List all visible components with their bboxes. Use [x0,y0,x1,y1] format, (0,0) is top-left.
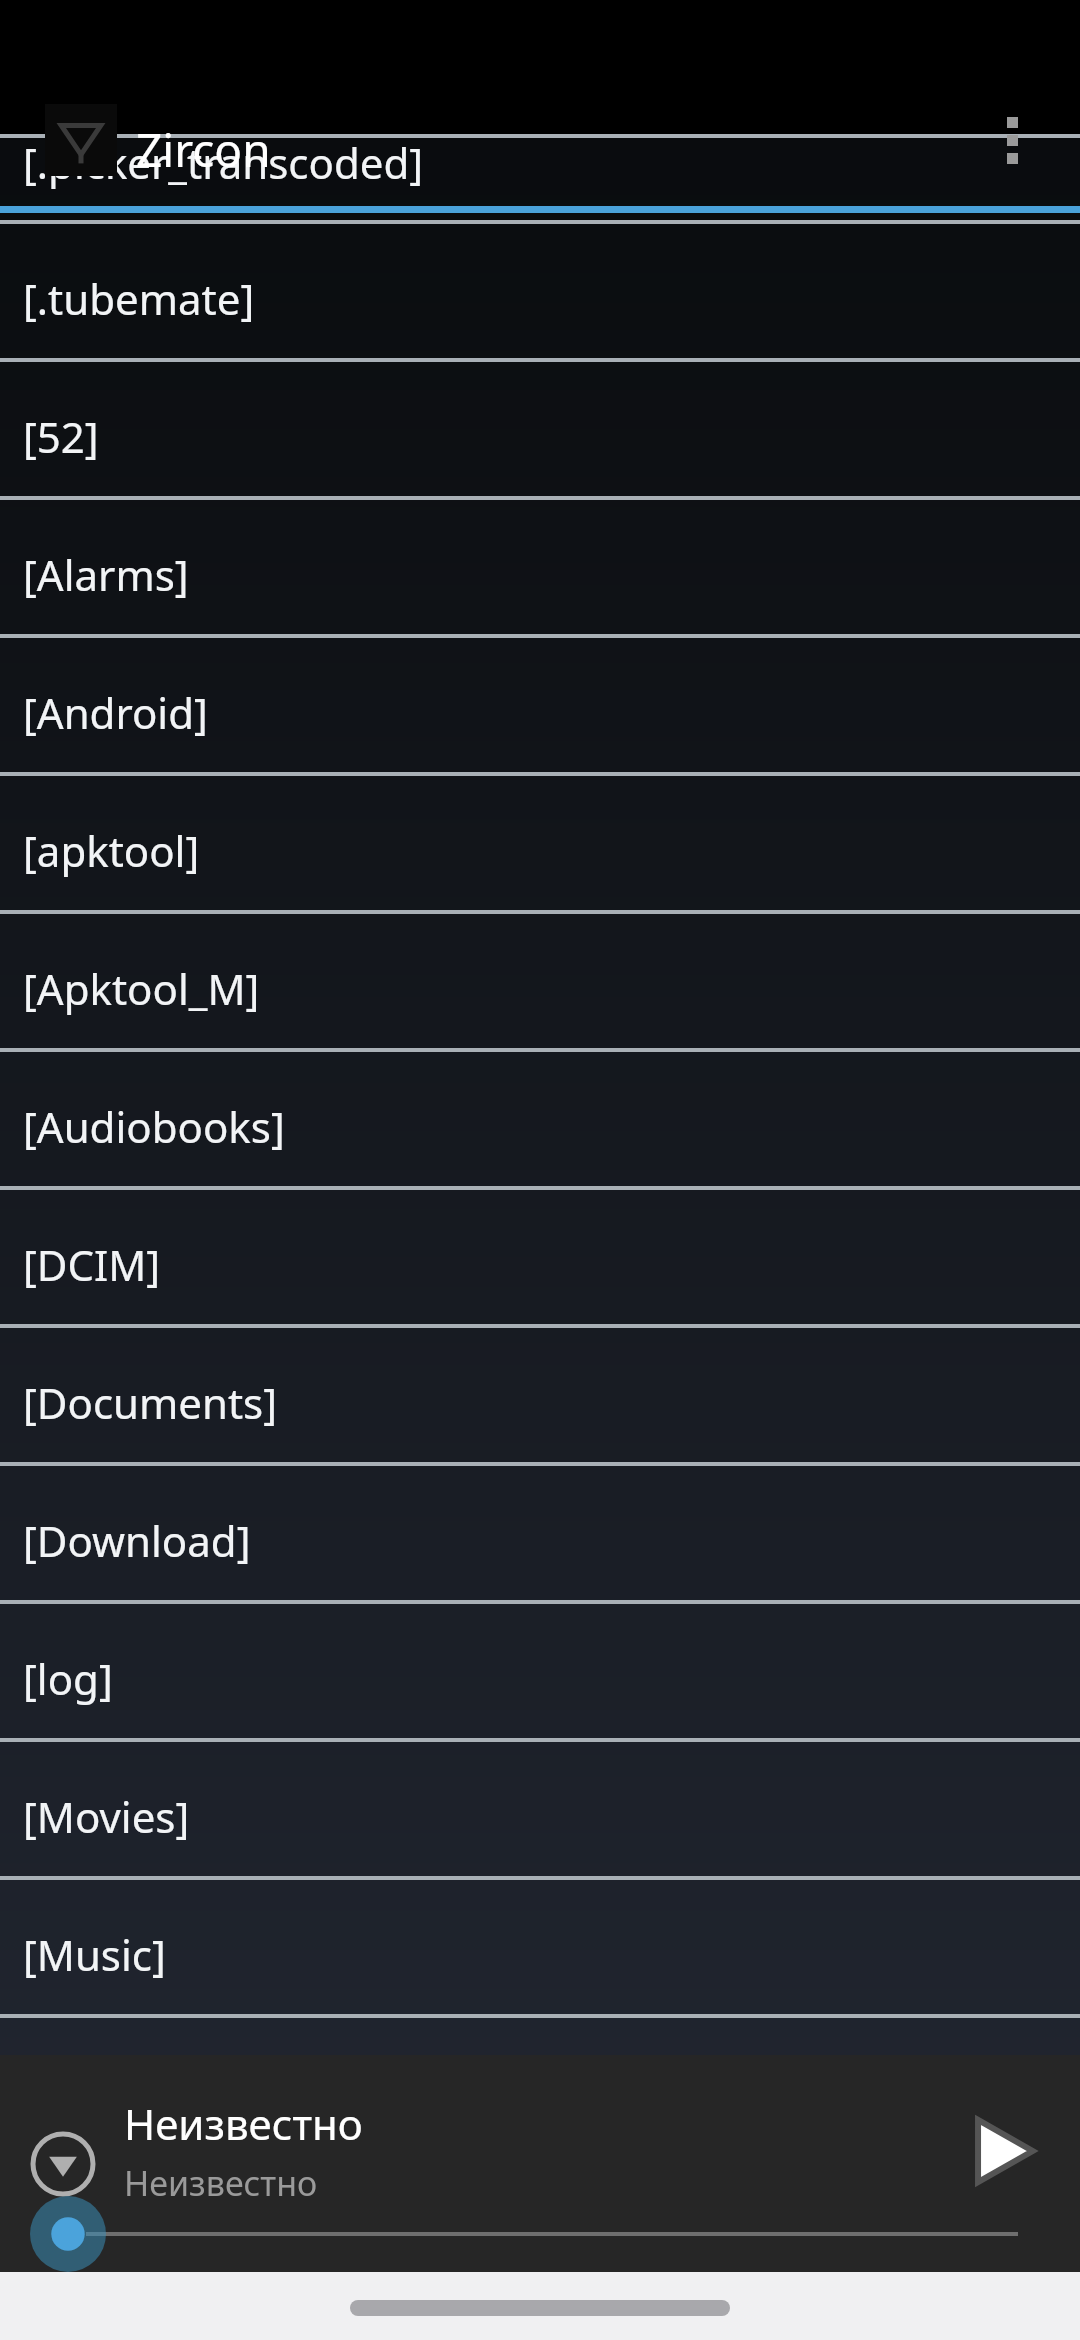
button[interactable]: [Download] [0,1466,1080,1600]
button[interactable]: [Android] [0,638,1080,772]
button[interactable]: [Alarms] [0,500,1080,634]
staticText: [Movies] [23,1788,190,1845]
button[interactable]: [Music] [0,1880,1080,2014]
staticText: [apktool] [23,822,200,879]
staticText: [Download] [23,1512,251,1569]
staticText: [52] [23,408,99,465]
staticText: [.picker_transcoded] [23,134,424,191]
button[interactable]: Collapse player [18,2119,108,2209]
staticText: Zircon [136,118,271,181]
button[interactable]: [apktool] [0,776,1080,910]
button[interactable]: Collapse player [0,2055,1080,2272]
button[interactable]: [Documents] [0,1328,1080,1462]
staticText: [Alarms] [23,546,189,603]
button[interactable]: [52] [0,362,1080,496]
staticText: [Apktool_M] [23,960,260,1017]
staticText: Неизвестно [124,2160,318,2206]
button[interactable]: More options [972,100,1052,180]
staticText: [log] [23,1650,113,1707]
staticText: [Documents] [23,1374,278,1431]
button[interactable]: [Audiobooks] [0,1052,1080,1186]
staticText: [.tubemate] [23,270,255,327]
staticText: [Notifications] [23,2064,301,2121]
button[interactable]: [Movies] [0,1742,1080,1876]
button[interactable]: [log] [0,1604,1080,1738]
staticText: [DCIM] [23,1236,161,1293]
button[interactable]: [DCIM] [0,1190,1080,1324]
button[interactable]: [.tubemate] [0,224,1080,358]
button[interactable]: [.picker_transcoded] [0,121,1080,191]
button[interactable]: [Notifications] [0,2018,1080,2152]
staticText: [Android] [23,684,208,741]
staticText: [Music] [23,1926,166,1983]
staticText: Неизвестно [124,2095,363,2152]
button[interactable]: [Apktool_M] [0,914,1080,1048]
button[interactable]: Play [948,2096,1058,2206]
staticText: [Audiobooks] [23,1098,285,1155]
